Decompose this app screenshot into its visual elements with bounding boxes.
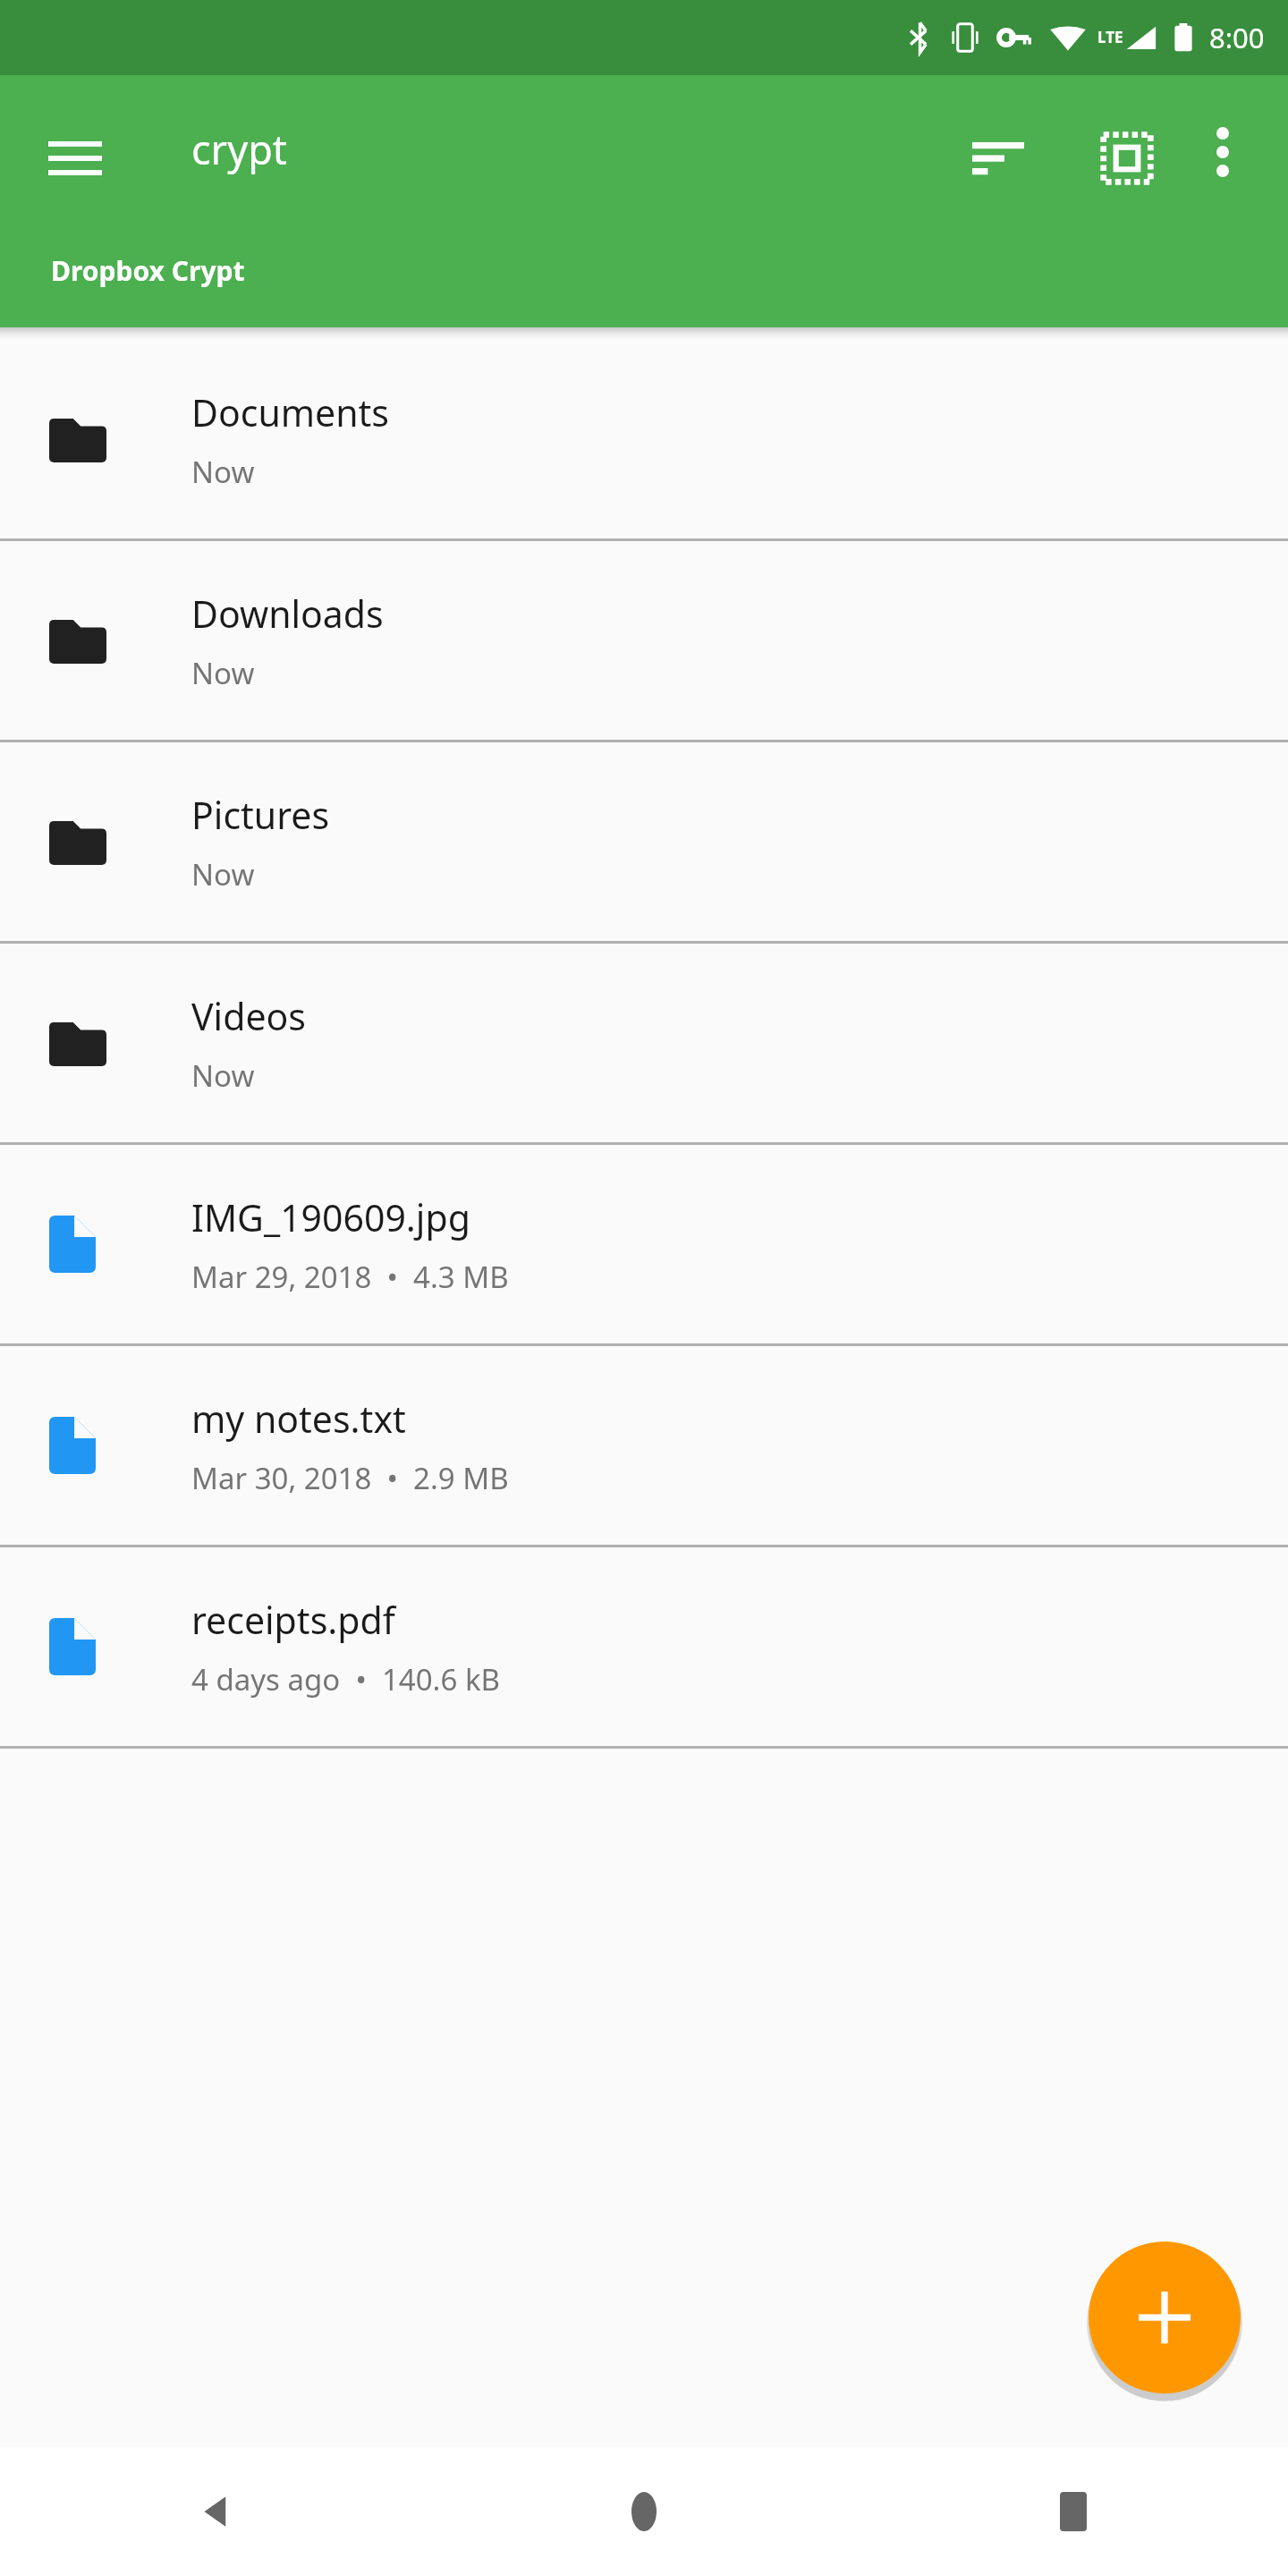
button[interactable]: IMG_190609.jpg [0,1145,1288,1346]
button[interactable]: Videos [0,944,1288,1145]
staticText: Downloads [191,589,384,639]
button[interactable]: Add [1089,2241,1241,2394]
button[interactable]: Open navigation drawer [20,103,131,214]
staticText: Pictures [191,790,330,840]
staticText: Mar 29, 2018 • 4.3 MB [191,1257,509,1297]
staticText: Now [191,1055,255,1096]
button[interactable]: Recent apps [859,2447,1288,2576]
staticText: IMG_190609.jpg [191,1192,470,1242]
staticText: my notes.txt [191,1394,406,1444]
button[interactable]: Pictures [0,742,1288,944]
button[interactable]: Select all [1072,103,1182,214]
button[interactable]: Back [0,2447,429,2576]
staticText: Videos [191,991,306,1041]
button[interactable]: Sort [943,103,1054,214]
staticText: Now [191,653,255,693]
button[interactable]: receipts.pdf [0,1547,1288,1749]
staticText: Now [191,854,255,894]
button[interactable]: my notes.txt [0,1346,1288,1547]
staticText: Now [191,452,255,492]
staticText: LTE [1097,27,1123,47]
button[interactable]: More options [1174,103,1272,201]
button[interactable]: Home [429,2447,859,2576]
staticText: 8:00 [1209,19,1265,56]
staticText: receipts.pdf [191,1595,395,1645]
staticText: crypt [191,122,288,176]
staticText: Documents [191,387,389,437]
button[interactable]: Documents [0,340,1288,541]
staticText: Dropbox Crypt [51,252,245,289]
staticText: Mar 30, 2018 • 2.9 MB [191,1458,509,1498]
button[interactable]: Downloads [0,541,1288,742]
staticText: 4 days ago • 140.6 kB [191,1659,500,1699]
